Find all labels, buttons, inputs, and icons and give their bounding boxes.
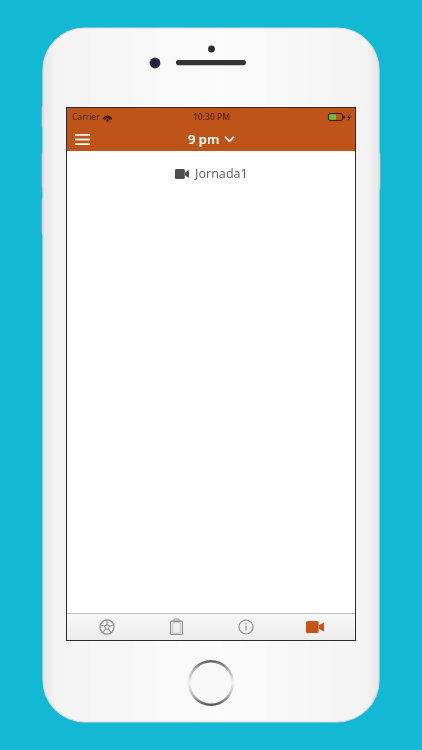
button[interactable]: Menu	[71, 128, 93, 150]
staticText: Carrier	[72, 111, 100, 123]
staticText: Jornada1	[195, 165, 248, 182]
button[interactable]: Videos	[285, 613, 345, 640]
button[interactable]: Standings	[146, 613, 206, 640]
button[interactable]: 9 pm	[188, 130, 234, 148]
button[interactable]: Jornada1	[175, 165, 248, 182]
staticText: 10:30 PM	[193, 111, 230, 123]
staticText: 9 pm	[188, 130, 220, 148]
button[interactable]: Matches	[77, 613, 137, 640]
button[interactable]: Info	[216, 613, 276, 640]
